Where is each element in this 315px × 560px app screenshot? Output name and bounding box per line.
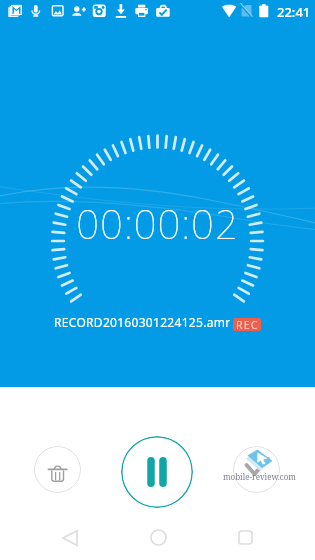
staticText: 22:41 [277,3,311,21]
button[interactable]: Back [55,515,85,560]
button[interactable]: Home [143,515,173,560]
button[interactable]: Delete recording [34,446,81,493]
button[interactable]: Recent apps [230,515,260,560]
staticText: RECORD20160301224125.amr [54,314,231,330]
staticText: REC [236,318,259,331]
button[interactable]: Stop recording [233,446,280,493]
staticText: 00:00:02 [76,196,239,250]
button[interactable]: Pause recording [121,436,193,508]
staticText: mobile-review.com [223,471,296,482]
